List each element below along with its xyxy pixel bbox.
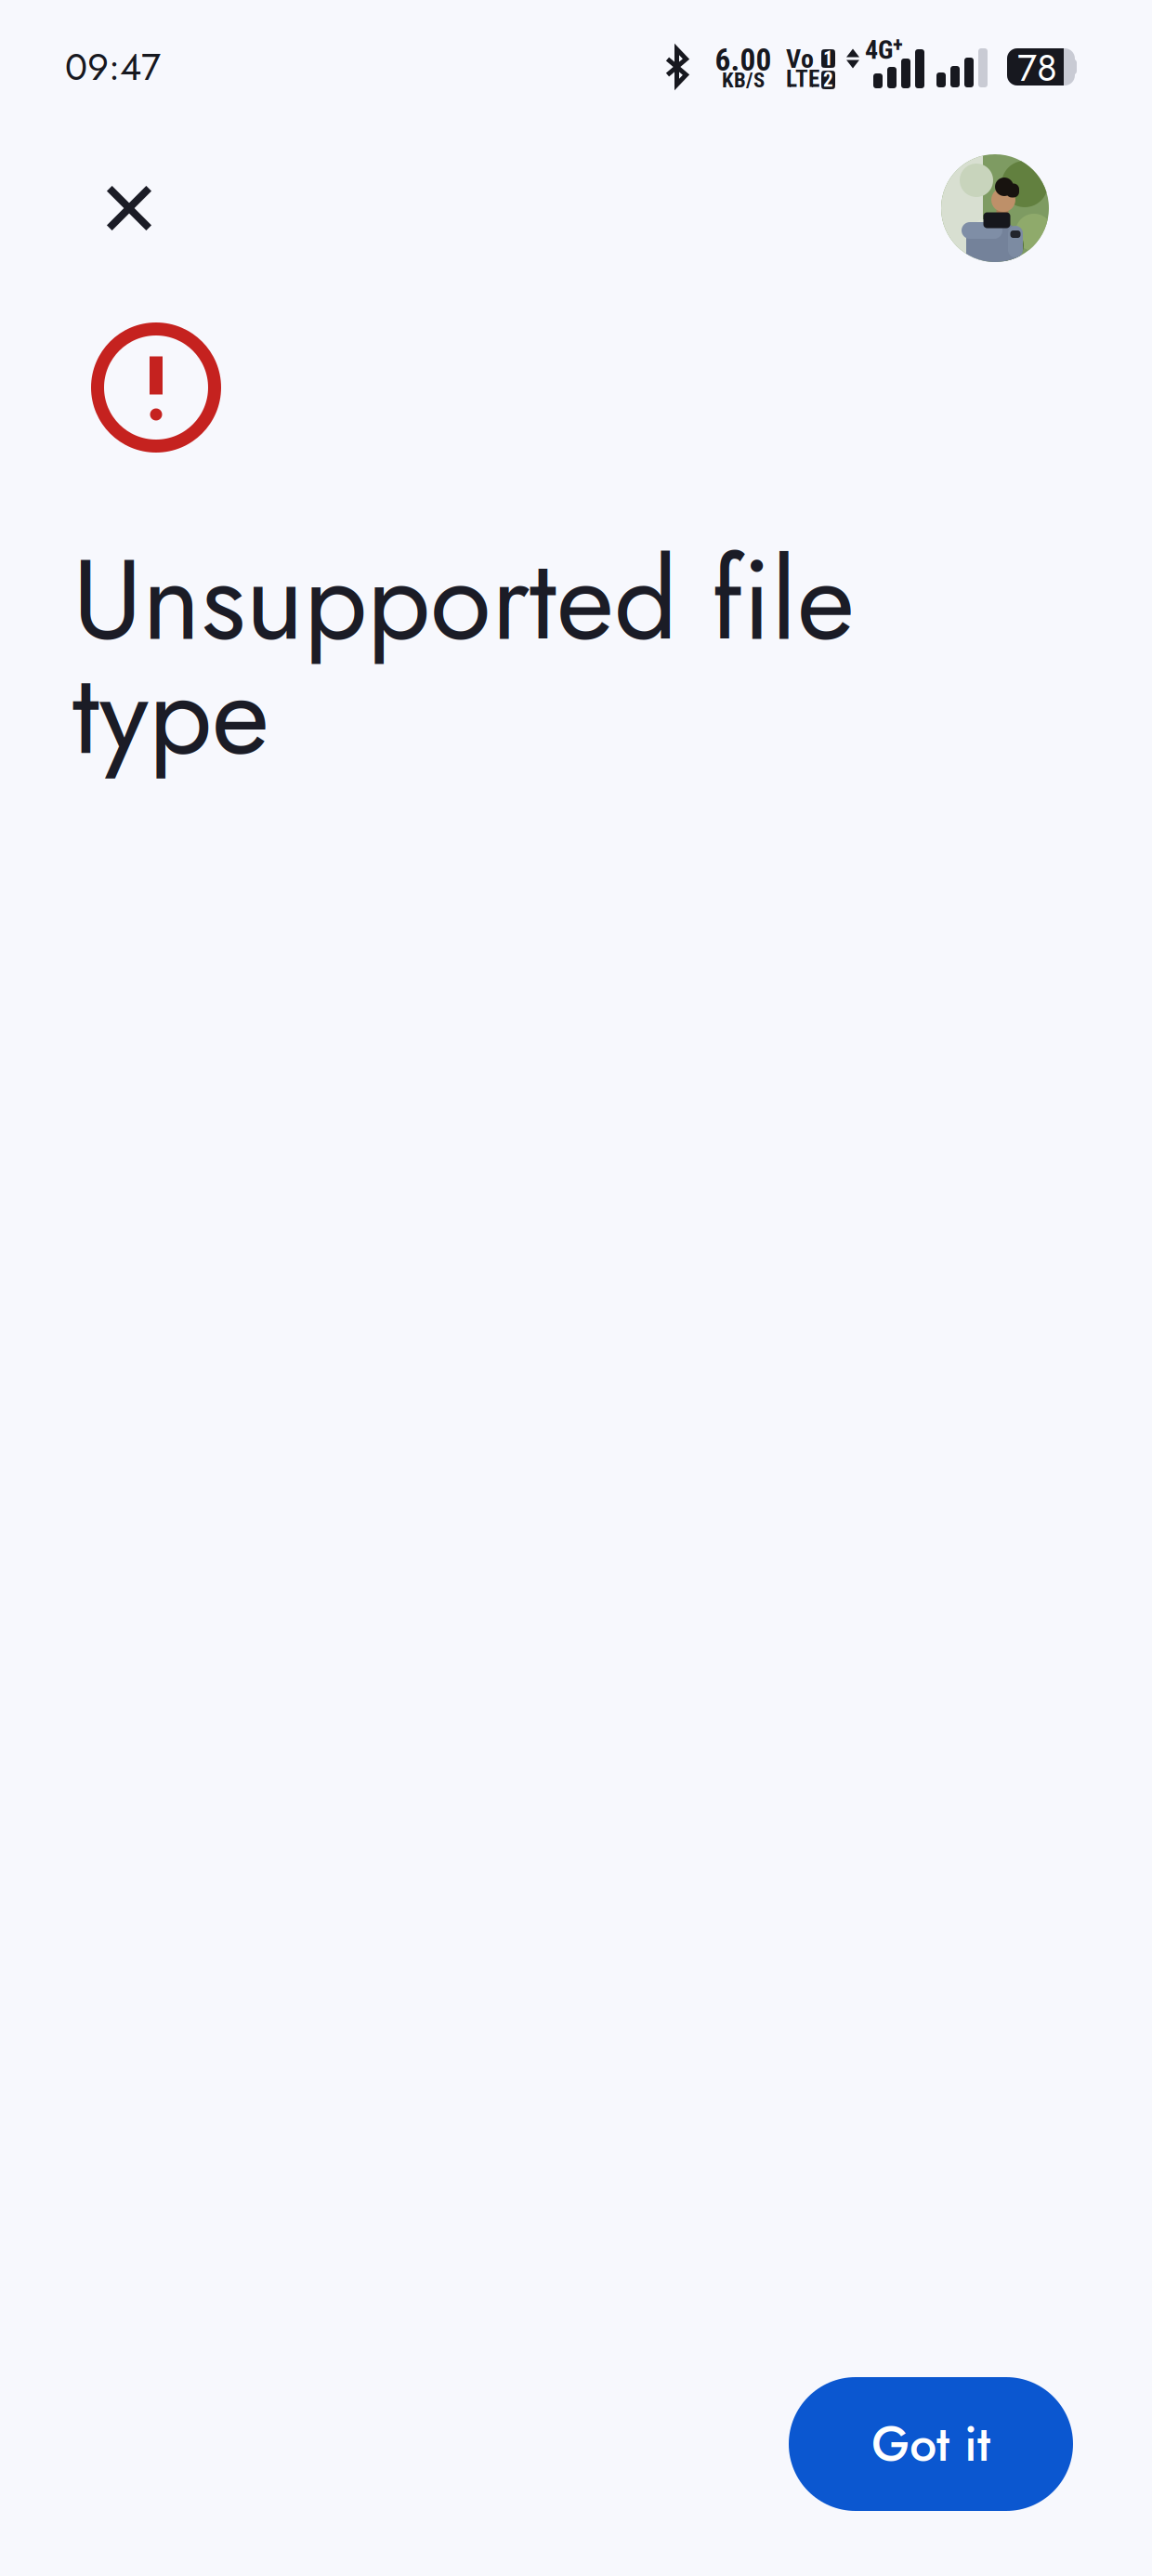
staticText: Vo	[786, 44, 814, 74]
staticText: LTE	[786, 65, 819, 93]
button[interactable]: Google Account	[941, 154, 1049, 262]
staticText: 6.00	[715, 42, 772, 78]
staticText: 1	[823, 47, 833, 70]
staticText: 09:47	[65, 40, 161, 94]
staticText: KB/S	[722, 68, 765, 93]
staticText: Unsupported file	[72, 519, 855, 681]
staticText: 2	[823, 68, 833, 92]
staticText: +	[893, 32, 903, 57]
button[interactable]: Got it	[789, 2377, 1073, 2511]
staticText: 78	[1017, 41, 1057, 95]
staticText: 4G	[865, 35, 893, 65]
staticText: type	[72, 634, 269, 795]
staticText: Got it	[871, 2409, 990, 2479]
button[interactable]: Close	[75, 154, 183, 262]
